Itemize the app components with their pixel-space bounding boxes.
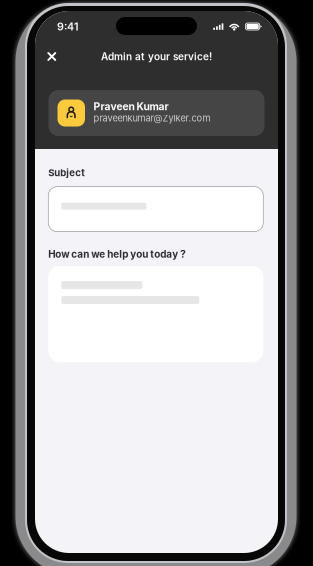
staticText: 9:41 <box>57 20 79 33</box>
staticText: How can we help you today ? <box>48 248 186 260</box>
button[interactable]: Message field <box>48 266 263 362</box>
button[interactable]: Close <box>35 45 75 67</box>
staticText: praveenkumar@Zylker.com <box>93 113 210 124</box>
button[interactable]: Subject field <box>48 187 263 232</box>
button[interactable]: Praveen Kumar <box>48 90 264 136</box>
staticText: Admin at your service! <box>101 50 212 63</box>
staticText: Praveen Kumar <box>93 100 168 113</box>
staticText: Subject <box>48 167 85 179</box>
